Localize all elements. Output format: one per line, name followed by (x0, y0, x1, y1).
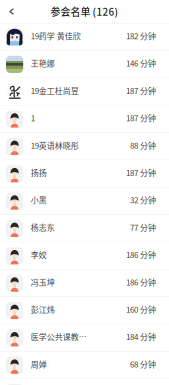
staticText: 王艳娜 (31, 57, 55, 69)
button[interactable]: 扬扬 (0, 160, 169, 188)
staticText: 187 分钟 (126, 167, 156, 178)
staticText: 冯玉坤 (31, 276, 55, 288)
button[interactable]: 19英语林晓彤 (0, 133, 169, 160)
staticText: 扬扬 (31, 167, 47, 178)
staticText: 小黑 (31, 194, 47, 206)
button[interactable]: 小黑 (0, 188, 169, 215)
button[interactable]: 19药学 黄佳欣 (0, 24, 169, 51)
button[interactable]: Back (0, 0, 23, 23)
button[interactable]: 王艳娜 (0, 51, 169, 78)
staticText: 160 分钟 (126, 303, 156, 315)
staticText: 参会名单 (126) (50, 4, 118, 19)
staticText: 周婵 (31, 358, 47, 370)
staticText: 19药学 黄佳欣 (31, 30, 81, 42)
staticText: 医学公共课教… (31, 331, 87, 342)
staticText: 19金工杜尚昱 (31, 85, 79, 96)
staticText: 32 分钟 (130, 194, 156, 206)
button[interactable]: 19金工杜尚昱 (0, 78, 169, 106)
staticText: 李姣 (31, 249, 47, 260)
button[interactable]: 李姣 (0, 242, 169, 270)
staticText: 187 分钟 (126, 112, 156, 124)
staticText: 182 分钟 (126, 30, 156, 42)
button[interactable]: 周婵 (0, 352, 169, 379)
staticText: 77 分钟 (130, 221, 156, 233)
staticText: 186 分钟 (126, 276, 156, 288)
staticText: 184 分钟 (126, 331, 156, 342)
button[interactable]: 彭江炜 (0, 297, 169, 324)
button[interactable]: 医学公共课教… (0, 324, 169, 352)
staticText: 杨志东 (31, 221, 55, 233)
button[interactable]: 杨志东 (0, 215, 169, 242)
button[interactable]: 1 (0, 106, 169, 133)
staticText: 彭江炜 (31, 303, 55, 315)
staticText: 88 分钟 (130, 139, 156, 151)
staticText: 1 (31, 112, 35, 124)
staticText: 19英语林晓彤 (31, 139, 79, 151)
staticText: 146 分钟 (126, 57, 156, 69)
staticText: 68 分钟 (130, 358, 156, 370)
staticText: 186 分钟 (126, 249, 156, 260)
button[interactable]: 冯玉坤 (0, 270, 169, 297)
staticText: 187 分钟 (126, 85, 156, 96)
